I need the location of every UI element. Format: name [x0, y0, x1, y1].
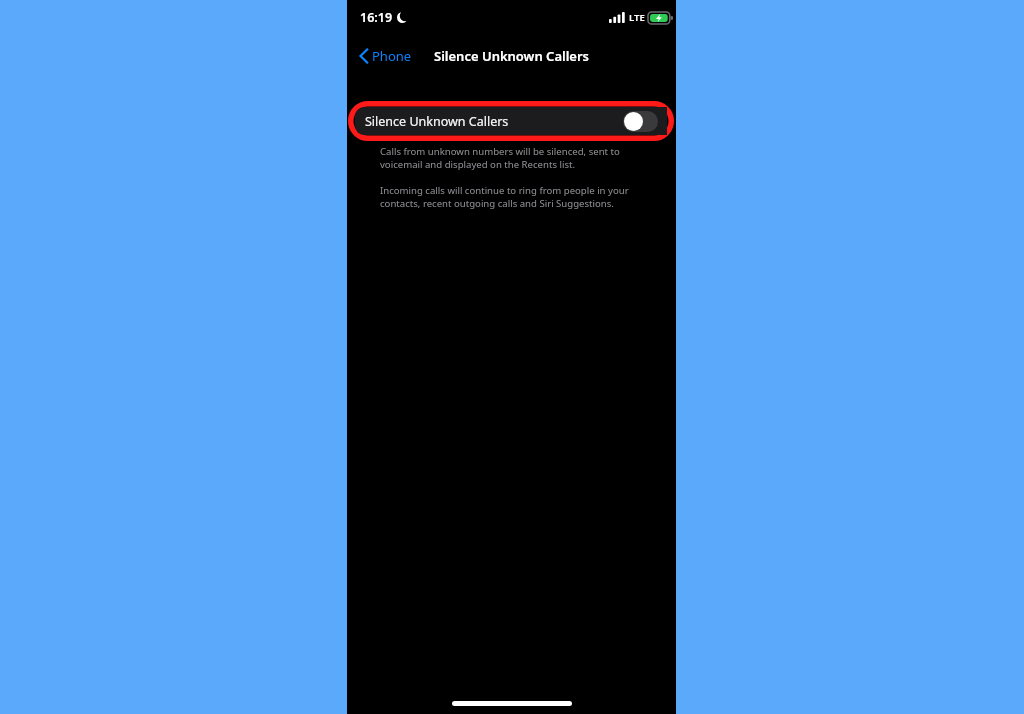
staticText: Silence Unknown Callers	[434, 47, 589, 65]
staticText: Silence Unknown Callers	[365, 113, 509, 130]
button[interactable]: Silence Unknown Callers	[355, 107, 667, 135]
button[interactable]: Silence Unknown Callers toggle, off	[623, 111, 658, 132]
staticText: LTE	[629, 11, 645, 24]
staticText: Incoming calls will continue to ring fro…	[380, 184, 652, 210]
staticText: Calls from unknown numbers will be silen…	[380, 145, 652, 171]
staticText: 16:19	[360, 9, 393, 26]
button[interactable]: Phone	[355, 41, 416, 71]
staticText: Phone	[372, 47, 412, 65]
